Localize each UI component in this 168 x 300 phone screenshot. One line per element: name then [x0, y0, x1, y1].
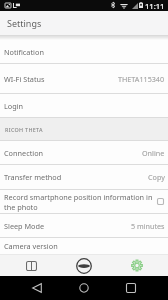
- staticText: Sleep Mode: [4, 221, 45, 231]
- button[interactable]: Camera: [57, 255, 110, 276]
- button[interactable]: Sleep Mode: [0, 214, 168, 237]
- staticText: WI-Fi Status: [4, 74, 45, 84]
- button[interactable]: Transfer method: [0, 165, 168, 189]
- staticText: 11:11: [145, 1, 165, 11]
- button[interactable]: Connection: [0, 141, 168, 164]
- button[interactable]: Home: [60, 276, 107, 300]
- staticText: Copy: [148, 172, 165, 182]
- staticText: Camera version: [4, 241, 58, 251]
- button[interactable]: Recents: [107, 276, 154, 300]
- staticText: Transfer method: [4, 172, 62, 182]
- staticText: Record smartphone position information i…: [4, 192, 154, 212]
- staticText: Login: [4, 101, 24, 111]
- staticText: 5 minutes: [131, 221, 165, 231]
- staticText: Online: [142, 148, 165, 158]
- button[interactable]: Settings: [110, 255, 163, 276]
- button[interactable]: Record smartphone position information i…: [0, 190, 168, 213]
- button[interactable]: Back: [14, 276, 60, 300]
- staticText: Connection: [4, 148, 44, 158]
- button[interactable]: Login: [0, 94, 168, 117]
- button[interactable]: WI-Fi Status: [0, 64, 168, 93]
- staticText: RICOH THETA: [5, 126, 43, 133]
- button[interactable]: Album: [5, 255, 57, 276]
- button[interactable]: Camera version: [0, 238, 168, 254]
- staticText: Notification: [4, 47, 44, 57]
- button[interactable]: Notification: [0, 40, 168, 63]
- staticText: Settings: [7, 17, 42, 29]
- staticText: THETA115340: [118, 74, 165, 84]
